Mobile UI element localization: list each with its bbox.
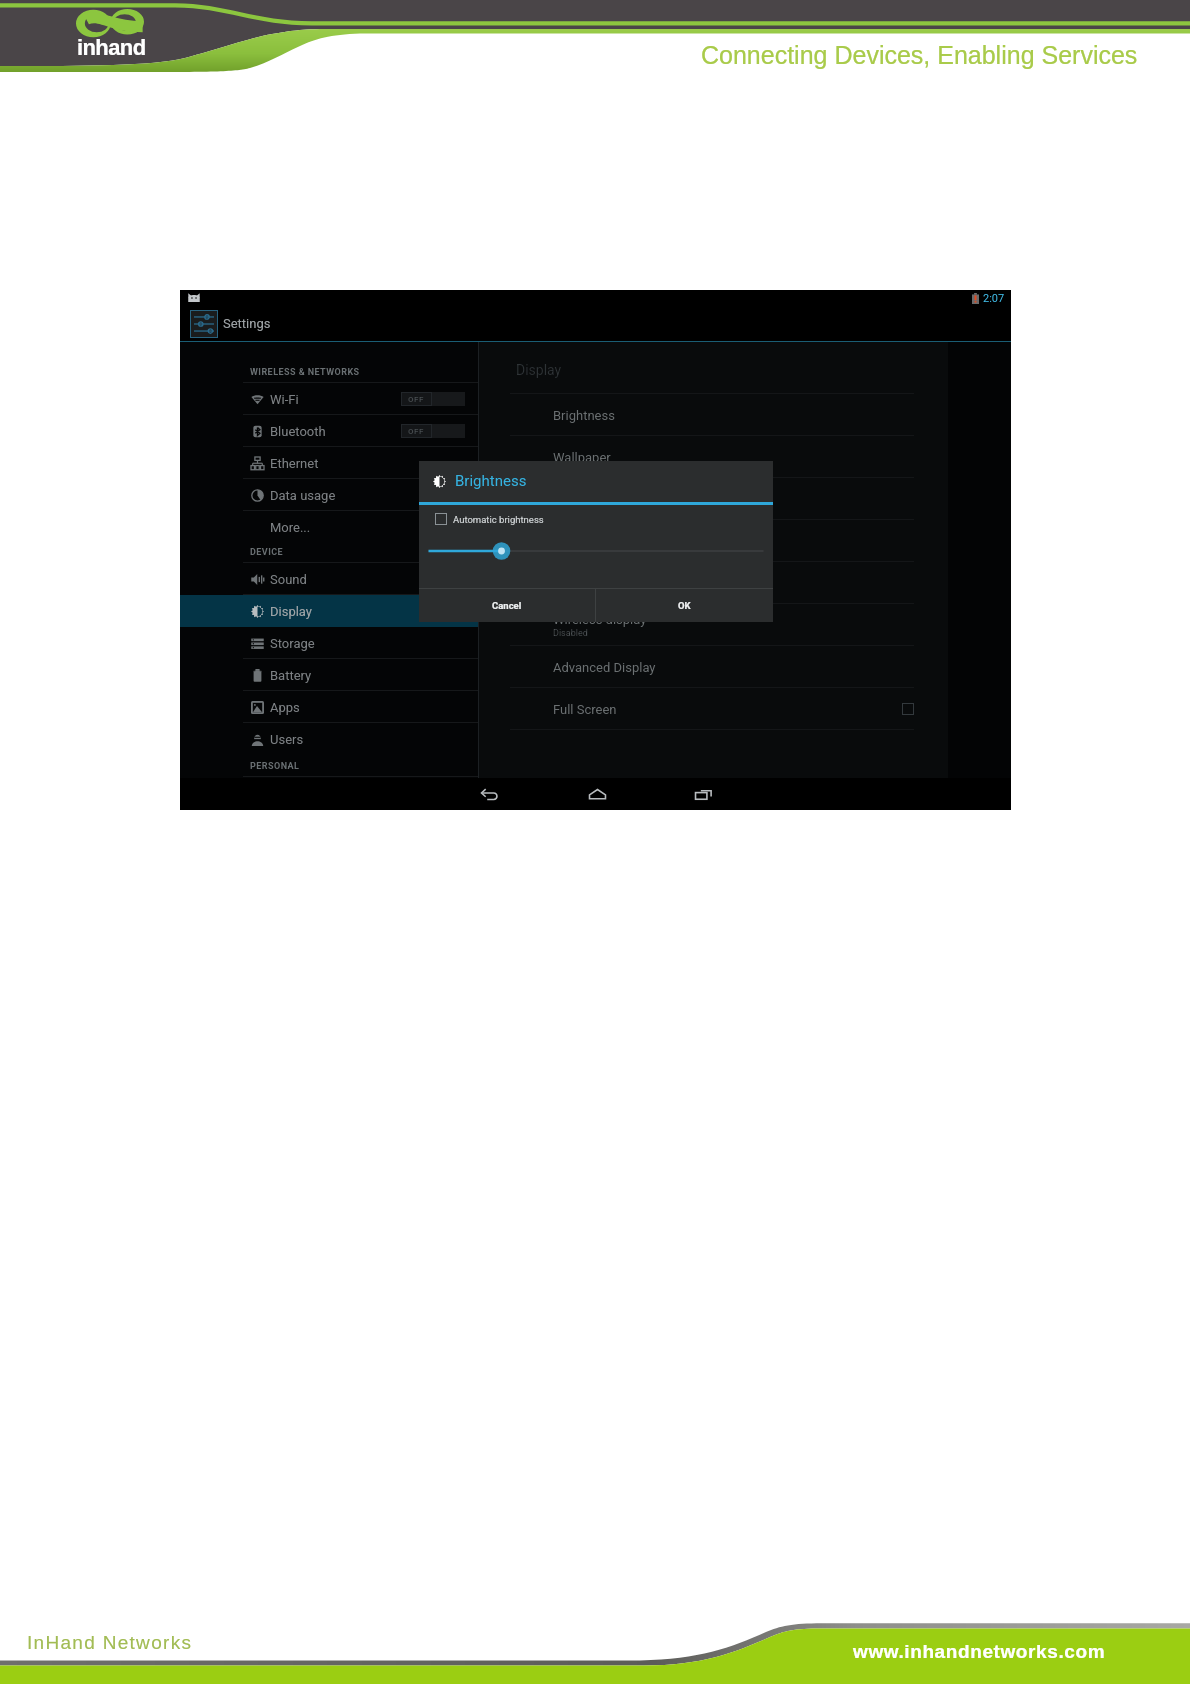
button[interactable]: Brightness (479, 394, 948, 436)
staticText: www.inhandnetworks.com (853, 1641, 1106, 1662)
staticText: WIRELESS & NETWORKS (250, 367, 360, 378)
button[interactable]: Settings app icon (180, 306, 1011, 341)
button[interactable]: Users (180, 723, 478, 755)
staticText: Display (270, 604, 312, 619)
button[interactable]: Ethernet (180, 447, 478, 479)
staticText: Wallpaper (553, 450, 611, 465)
button[interactable]: Wireless display (479, 604, 948, 646)
staticText: PERSONAL (250, 761, 300, 772)
staticText: Sound (270, 572, 307, 587)
staticText: Bluetooth (270, 424, 326, 439)
button[interactable]: More... (180, 511, 478, 543)
button[interactable]: Apps (180, 691, 478, 723)
staticText: Full Screen (553, 702, 617, 717)
staticText: Storage (270, 636, 315, 651)
button[interactable]: Bluetooth (180, 415, 478, 447)
staticText: Ethernet (270, 456, 319, 471)
button[interactable]: Sleep (479, 478, 948, 520)
button[interactable]: Advanced Display (479, 646, 948, 688)
button[interactable]: OK (596, 589, 773, 622)
button[interactable]: Recents (687, 778, 719, 810)
staticText: Data usage (270, 488, 336, 503)
other: Settings app icon (190, 310, 218, 338)
staticText: InHand Networks (27, 1632, 193, 1653)
button[interactable]: Data usage (180, 479, 478, 511)
button[interactable]: OFF (401, 424, 465, 438)
staticText: Advanced Display (553, 660, 656, 675)
staticText: OFF (408, 427, 425, 436)
staticText: Cancel (492, 600, 522, 611)
staticText: DEVICE (250, 547, 284, 558)
staticText: Off (553, 544, 566, 555)
staticText: Automatic brightness (453, 514, 544, 525)
staticText: 2:07 (983, 292, 1005, 305)
staticText: Settings (223, 316, 271, 331)
staticText: After 1 minute of inactivity (553, 502, 659, 513)
staticText: Connecting Devices, Enabling Services (701, 41, 1138, 69)
staticText: Normal (553, 586, 583, 597)
staticText: Brightness (455, 472, 527, 490)
staticText: More... (270, 520, 311, 535)
staticText: Display (516, 362, 562, 378)
button[interactable]: Home (581, 778, 613, 810)
button[interactable]: Wi-Fi (180, 383, 478, 415)
staticText: Disabled (553, 628, 588, 639)
staticText: Wireless display (553, 612, 647, 627)
staticText: Apps (270, 700, 300, 715)
staticText: Brightness (553, 408, 615, 423)
button[interactable]: Full Screen (479, 688, 948, 730)
staticText: Wi-Fi (270, 392, 299, 407)
staticText: inhand (77, 35, 146, 60)
staticText: Users (270, 732, 304, 747)
button[interactable]: Automatic brightness (435, 513, 544, 525)
button[interactable]: Cancel (419, 589, 595, 622)
staticText: Battery (270, 668, 312, 683)
button[interactable]: Storage (180, 627, 478, 659)
button[interactable]: Font size (479, 562, 948, 604)
button[interactable]: OFF (401, 392, 465, 406)
button[interactable]: Sound (180, 563, 478, 595)
button[interactable]: Back (473, 778, 505, 810)
button[interactable]: Daydream (479, 520, 948, 562)
staticText: OK (678, 600, 691, 611)
button[interactable]: Wallpaper (479, 436, 948, 478)
button[interactable]: Battery (180, 659, 478, 691)
staticText: OFF (408, 395, 425, 404)
button[interactable]: Display (180, 595, 478, 627)
